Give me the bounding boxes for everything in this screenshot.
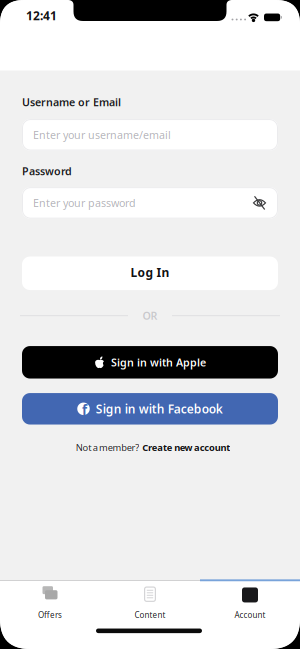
staticText: Password [22,164,72,178]
button[interactable]: Offers [8,581,92,625]
staticText: Enter your password [33,196,136,210]
staticText: Account [234,610,265,620]
button[interactable]: Log In [22,257,278,290]
staticText: Content [134,610,165,620]
staticText: Offers [38,610,62,620]
staticText: Not a member? [76,441,139,454]
staticText: OR [142,309,157,323]
button[interactable]: Enter your username/email [22,119,278,151]
button[interactable]: Show password [246,190,272,216]
staticText: 12:41 [26,7,57,23]
button[interactable]: Account [208,581,292,625]
staticText: Log In [130,264,169,280]
button[interactable]: Sign in with Apple [22,346,278,379]
staticText: f [82,401,87,419]
button[interactable]: f [22,393,278,425]
staticText: Enter your username/email [33,128,171,142]
staticText: Username or Email [22,95,121,109]
staticText: Create new account [142,441,230,454]
button[interactable]: Content [108,581,192,625]
staticText: Sign in with Apple [111,355,206,369]
button[interactable]: Create new account [142,441,230,454]
button[interactable]: Enter your password [22,187,278,219]
staticText: Sign in with Facebook [96,401,223,417]
